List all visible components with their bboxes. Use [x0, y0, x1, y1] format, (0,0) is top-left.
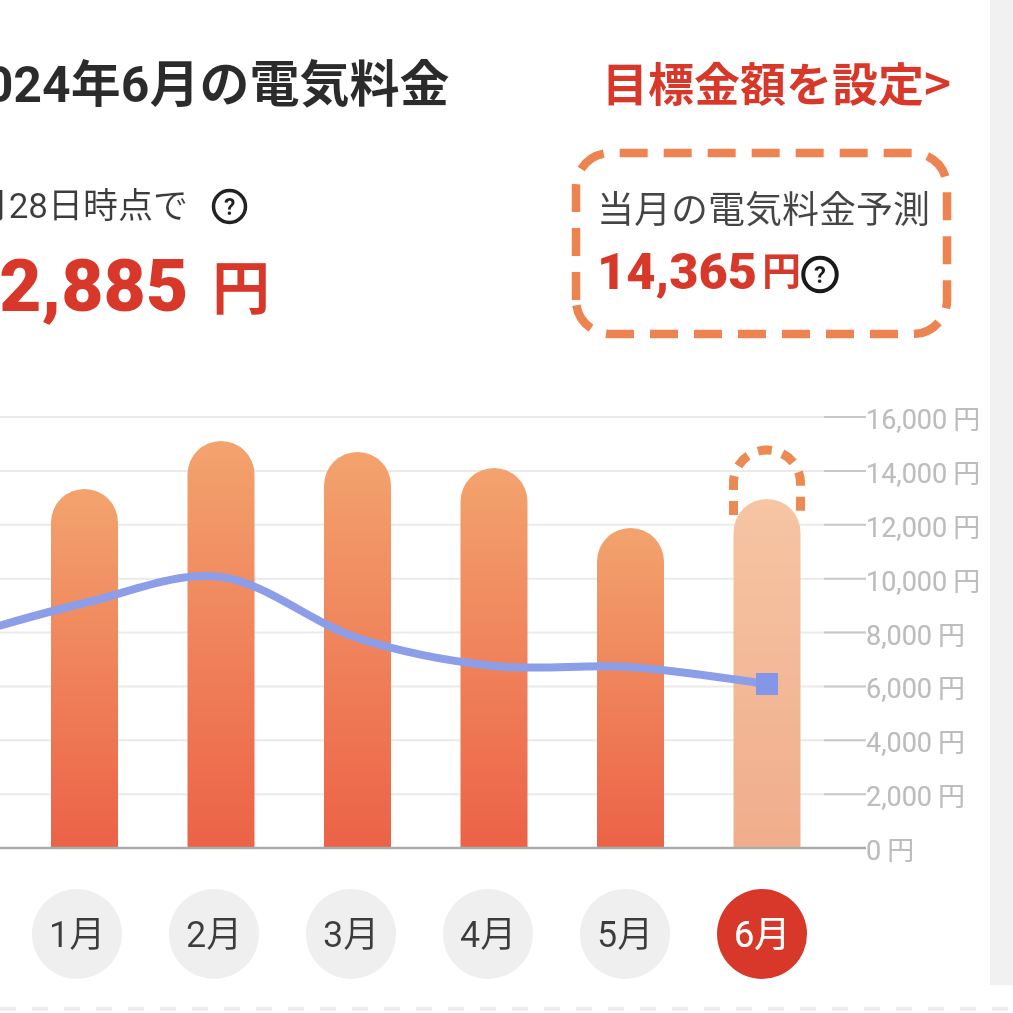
staticText: 2月 — [186, 905, 243, 957]
button[interactable]: 1月 — [32, 886, 122, 976]
staticText: 1月 — [49, 905, 106, 957]
staticText: 2,000 円 — [866, 775, 966, 814]
staticText: 5月 — [597, 905, 654, 957]
staticText: 4月 — [460, 905, 517, 957]
staticText: 10,000 円 — [866, 560, 981, 599]
staticText: 6,000 円 — [866, 667, 966, 706]
staticText: 12,000 円 — [866, 506, 981, 545]
staticText: 3月 — [323, 905, 380, 957]
button[interactable]: ? — [803, 258, 837, 292]
staticText: 6月28日時点で — [0, 177, 189, 228]
button[interactable]: 3月 — [306, 886, 396, 976]
button[interactable]: 4月 — [443, 886, 533, 976]
staticText: ? — [224, 194, 236, 221]
button[interactable]: ? — [214, 191, 246, 223]
staticText: 12,885 — [0, 243, 189, 329]
staticText: 円 — [212, 242, 271, 326]
staticText: 円 — [762, 240, 802, 296]
staticText: 0 円 — [866, 829, 915, 868]
staticText: 当月の電気料金予測 — [597, 180, 930, 234]
button[interactable]: 6月 — [717, 886, 807, 976]
staticText: 14,365 — [597, 242, 757, 301]
staticText: 2024年6月の電気料金 — [0, 44, 450, 116]
button[interactable]: 目標金額を設定> — [602, 48, 952, 115]
staticText: ? — [814, 261, 826, 289]
staticText: 14,000 円 — [866, 452, 981, 491]
button[interactable]: 5月 — [580, 886, 670, 976]
staticText: 8,000 円 — [866, 614, 966, 653]
staticText: 6月 — [734, 905, 791, 957]
staticText: 16,000 円 — [866, 398, 981, 437]
button[interactable]: 2月 — [169, 886, 259, 976]
staticText: 4,000 円 — [866, 721, 966, 760]
